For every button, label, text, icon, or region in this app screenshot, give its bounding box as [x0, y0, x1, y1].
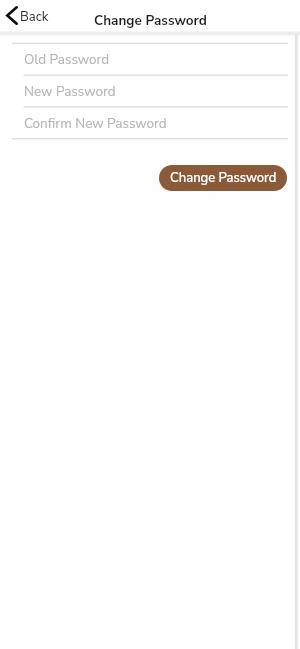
staticText: Back: [20, 8, 49, 26]
staticText: Confirm New Password: [24, 114, 167, 132]
staticText: Old Password: [24, 50, 110, 68]
button[interactable]: Confirm New Password: [0, 107, 300, 139]
button[interactable]: Old Password: [0, 43, 300, 75]
button[interactable]: New Password: [0, 75, 300, 107]
staticText: New Password: [24, 82, 116, 100]
button[interactable]: Change Password: [159, 165, 287, 191]
staticText: Change Password: [94, 11, 207, 29]
button[interactable]: Back: [0, 0, 58, 31]
staticText: Change Password: [170, 169, 277, 187]
other: Back: [6, 6, 18, 25]
